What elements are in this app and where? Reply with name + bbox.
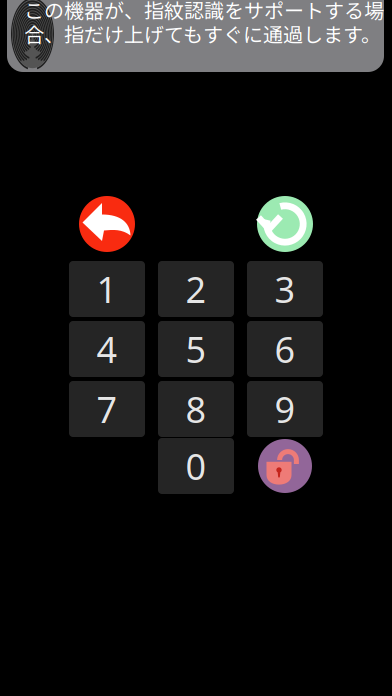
button[interactable]: 0 — [158, 438, 234, 494]
staticText: 7 — [96, 385, 117, 433]
button[interactable]: 1 — [69, 261, 145, 317]
button[interactable]: 6 — [247, 321, 323, 377]
staticText: 1 — [96, 265, 117, 313]
staticText: 5 — [185, 325, 206, 373]
button[interactable]: Unlock — [258, 439, 312, 493]
staticText: 4 — [96, 325, 117, 373]
button[interactable]: 7 — [69, 381, 145, 437]
button[interactable]: 8 — [158, 381, 234, 437]
staticText: 6 — [274, 325, 295, 373]
button[interactable]: Back — [79, 196, 135, 252]
button[interactable]: 3 — [247, 261, 323, 317]
staticText: この機器が、指紋認識をサポートする場合、指だけ上げてもすぐに通過します。 — [24, 0, 384, 48]
staticText: 9 — [274, 385, 295, 433]
staticText: 8 — [185, 385, 206, 433]
button[interactable]: 4 — [69, 321, 145, 377]
button[interactable]: 2 — [158, 261, 234, 317]
staticText: 0 — [185, 442, 206, 490]
button[interactable]: Refresh — [257, 196, 313, 252]
staticText: 3 — [274, 265, 295, 313]
staticText: 2 — [185, 265, 206, 313]
button[interactable]: 5 — [158, 321, 234, 377]
button[interactable]: 9 — [247, 381, 323, 437]
